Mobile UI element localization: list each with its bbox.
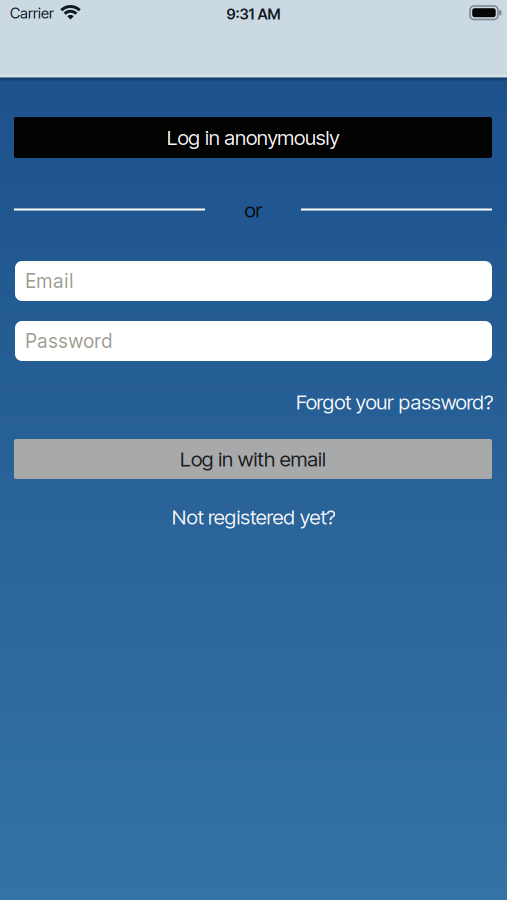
button[interactable]: Forgot your password? xyxy=(296,389,493,414)
textField[interactable]: Email xyxy=(25,269,482,292)
staticText: Not registered yet? xyxy=(172,505,335,529)
staticText: Password xyxy=(25,329,113,352)
staticText: Email xyxy=(25,269,74,292)
button[interactable]: Log in anonymously xyxy=(14,117,492,158)
button[interactable]: Log in with email xyxy=(14,439,492,479)
staticText: Log in anonymously xyxy=(167,125,339,150)
button[interactable]: Not registered yet? xyxy=(103,504,403,530)
staticText: or xyxy=(245,198,262,222)
staticText: Carrier xyxy=(10,4,54,22)
staticText: Forgot your password? xyxy=(296,389,493,414)
secureTextField[interactable]: Password xyxy=(25,329,482,352)
staticText: 9:31 AM xyxy=(226,5,280,23)
staticText: Log in with email xyxy=(180,447,326,471)
